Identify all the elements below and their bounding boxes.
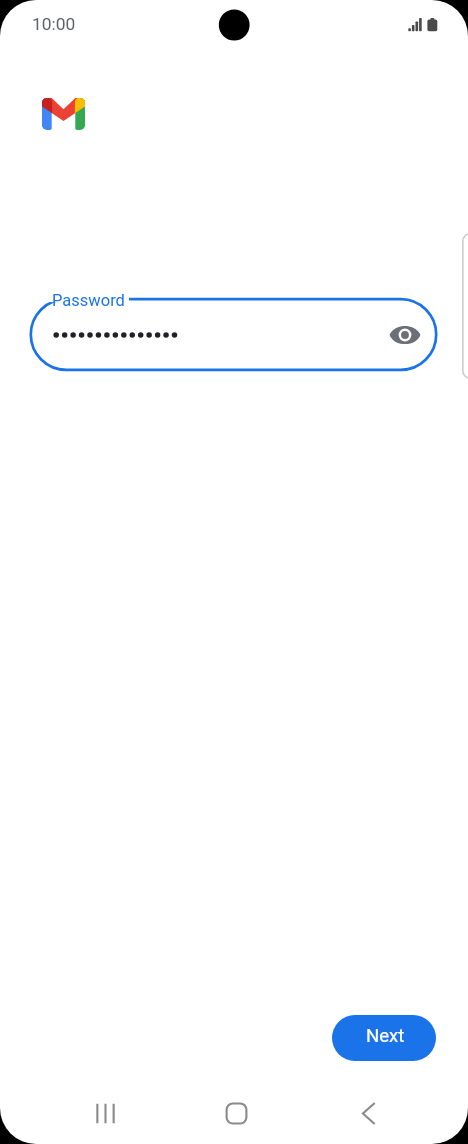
staticText: 10:00 [32,14,76,34]
button[interactable]: Show password [385,315,425,355]
button[interactable]: Edge panel [462,233,468,379]
button[interactable]: Password [30,290,437,371]
staticText: Next [366,1025,405,1047]
staticText: Password [52,291,125,310]
button[interactable]: Recent apps [73,1081,138,1144]
button[interactable]: Next [332,1015,436,1061]
button[interactable]: Home [204,1081,269,1144]
button[interactable]: Back [336,1081,401,1144]
